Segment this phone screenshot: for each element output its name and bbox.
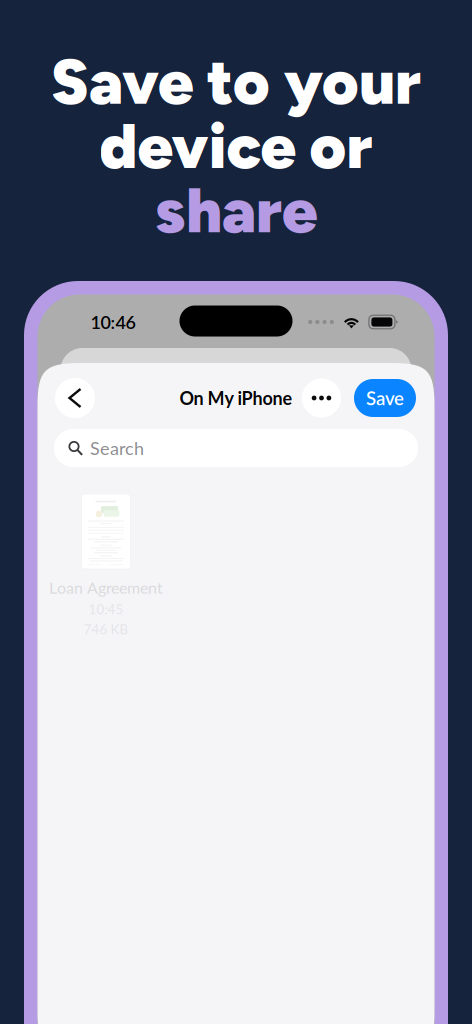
button[interactable]: More options (302, 378, 341, 417)
staticText: On My iPhone (179, 387, 292, 409)
staticText: Save (366, 387, 404, 409)
staticText: device or (99, 108, 372, 184)
staticText: Search (90, 437, 144, 459)
button[interactable]: Search (54, 429, 418, 467)
staticText: Loan Agreement (49, 578, 163, 597)
staticText: 10:45 (88, 601, 123, 617)
staticText: share (155, 173, 317, 248)
staticText: Save to your (51, 44, 421, 119)
staticText: 746 KB (83, 621, 128, 637)
button[interactable]: Back (55, 378, 95, 418)
button[interactable]: Save (354, 379, 416, 417)
staticText: 10:46 (90, 311, 135, 333)
